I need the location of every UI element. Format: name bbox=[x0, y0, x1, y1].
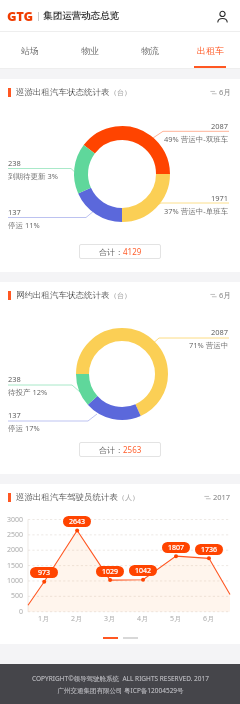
staticText: 停运 11% bbox=[8, 220, 40, 230]
button[interactable]: 合计： bbox=[79, 244, 161, 259]
staticText: 网约出租汽车状态统计表 bbox=[16, 290, 110, 301]
staticText: 1807 bbox=[168, 543, 185, 553]
staticText: 2月 bbox=[71, 614, 83, 624]
button[interactable]: Select period bbox=[204, 492, 231, 502]
staticText: 5月 bbox=[170, 614, 182, 624]
staticText: 2087 bbox=[211, 121, 229, 131]
staticText: 待投产 12% bbox=[8, 387, 48, 397]
button[interactable]: 站场 bbox=[0, 32, 60, 69]
staticText: 物业 bbox=[81, 45, 99, 56]
staticText: 1042 bbox=[135, 566, 152, 576]
staticText: 4月 bbox=[137, 614, 149, 624]
staticText: 0 bbox=[19, 607, 24, 617]
staticText: 37% 营运中-单班车 bbox=[164, 206, 229, 216]
staticText: （台） bbox=[110, 291, 131, 300]
button[interactable]: 物业 bbox=[60, 32, 120, 69]
staticText: 4129 bbox=[123, 246, 142, 257]
staticText: 500 bbox=[11, 591, 24, 601]
staticText: 1500 bbox=[7, 561, 24, 571]
button[interactable]: 出租车 bbox=[180, 32, 240, 69]
button[interactable]: 合计： bbox=[79, 442, 161, 457]
staticText: 1736 bbox=[201, 545, 218, 555]
staticText: 合计： bbox=[99, 247, 123, 257]
staticText: GTG bbox=[7, 7, 33, 25]
staticText: 2643 bbox=[69, 517, 86, 527]
button[interactable]: Select period bbox=[210, 87, 231, 97]
staticText: （人） bbox=[118, 493, 139, 502]
staticText: （台） bbox=[110, 88, 131, 97]
staticText: 2000 bbox=[7, 545, 24, 555]
staticText: 巡游出租汽车驾驶员统计表 bbox=[16, 492, 118, 503]
staticText: 137 bbox=[8, 207, 21, 217]
staticText: 2563 bbox=[123, 444, 142, 455]
staticText: 站场 bbox=[21, 45, 39, 56]
staticText: 停运 17% bbox=[8, 423, 40, 433]
staticText: 1029 bbox=[102, 567, 119, 577]
staticText: 物流 bbox=[141, 45, 159, 56]
staticText: 出租车 bbox=[197, 45, 224, 56]
staticText: 973 bbox=[38, 568, 51, 578]
staticText: 6月 bbox=[219, 87, 231, 97]
staticText: 广州交通集团有限公司 粤ICP备12004529号 bbox=[57, 686, 184, 695]
staticText: 2087 bbox=[211, 327, 229, 337]
staticText: 3月 bbox=[104, 614, 116, 624]
staticText: 238 bbox=[8, 374, 21, 384]
staticText: 137 bbox=[8, 410, 21, 420]
staticText: 238 bbox=[8, 158, 21, 168]
staticText: 2500 bbox=[7, 530, 24, 540]
staticText: 巡游出租汽车状态统计表 bbox=[16, 87, 110, 98]
staticText: 49% 营运中-双班车 bbox=[164, 134, 229, 144]
staticText: 71% 营运中 bbox=[189, 340, 229, 350]
staticText: 1971 bbox=[211, 193, 229, 203]
button[interactable]: Select period bbox=[210, 290, 231, 300]
staticText: 3000 bbox=[7, 515, 24, 525]
staticText: 合计： bbox=[99, 445, 123, 455]
staticText: 1月 bbox=[38, 614, 50, 624]
staticText: 2017 bbox=[213, 492, 231, 502]
staticText: 6月 bbox=[203, 614, 215, 624]
staticText: 集团运营动态总览 bbox=[43, 10, 119, 22]
staticText: 到期待更新 3% bbox=[8, 171, 58, 181]
staticText: COPYRIGHT©领导驾驶舱系统 ALL RIGHTS RESERVED. 2… bbox=[32, 674, 209, 683]
staticText: 1000 bbox=[7, 576, 24, 586]
button[interactable]: 物流 bbox=[120, 32, 180, 69]
button[interactable]: Account bbox=[210, 4, 234, 28]
staticText: 6月 bbox=[219, 290, 231, 300]
